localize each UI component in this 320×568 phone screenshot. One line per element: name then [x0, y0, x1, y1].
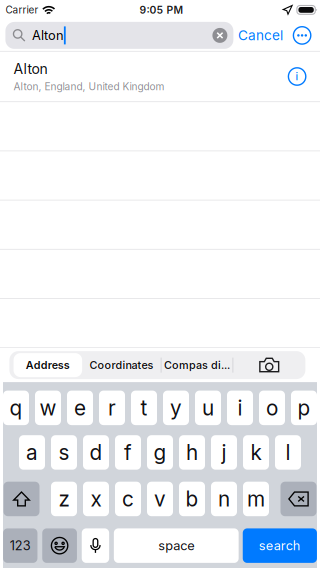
- staticText: Carrier: [5, 4, 38, 16]
- staticText: Alton: [13, 60, 47, 77]
- button[interactable]: Camera: [233, 353, 305, 377]
- staticText: space: [158, 538, 194, 553]
- staticText: i: [296, 70, 299, 83]
- staticText: Coordinates: [89, 359, 153, 372]
- button[interactable]: Coordinates: [82, 353, 161, 377]
- staticText: y: [170, 395, 182, 420]
- staticText: j: [221, 440, 226, 465]
- button[interactable]: k: [243, 435, 269, 470]
- button[interactable]: x: [83, 482, 109, 516]
- staticText: m: [247, 486, 265, 512]
- staticText: t: [140, 395, 147, 420]
- button[interactable]: search: [243, 528, 317, 563]
- button[interactable]: space: [114, 528, 239, 563]
- button[interactable]: Compas di...: [161, 353, 232, 377]
- staticText: e: [74, 395, 86, 420]
- staticText: a: [26, 440, 38, 465]
- staticText: z: [58, 486, 69, 512]
- staticText: l: [285, 440, 290, 465]
- button[interactable]: p: [291, 391, 317, 425]
- staticText: Address: [26, 359, 70, 372]
- button[interactable]: Shift: [3, 482, 39, 516]
- button[interactable]: r: [99, 391, 125, 425]
- button[interactable]: h: [179, 435, 205, 470]
- button[interactable]: 123: [3, 528, 37, 563]
- button[interactable]: Dictation: [82, 528, 109, 563]
- staticText: Compas di...: [164, 359, 230, 372]
- staticText: Alton: [32, 28, 64, 43]
- button[interactable]: d: [83, 435, 109, 470]
- button[interactable]: i: [227, 391, 253, 425]
- staticText: w: [39, 395, 56, 420]
- button[interactable]: v: [147, 482, 173, 516]
- button[interactable]: Alton: [0, 52, 320, 101]
- button[interactable]: j: [211, 435, 237, 470]
- button[interactable]: f: [115, 435, 141, 470]
- button[interactable]: o: [259, 391, 285, 425]
- button[interactable]: t: [131, 391, 157, 425]
- button[interactable]: s: [51, 435, 77, 470]
- button[interactable]: e: [67, 391, 93, 425]
- button[interactable]: More options: [293, 26, 312, 45]
- staticText: Alton, England, United Kingdom: [13, 80, 164, 93]
- button[interactable]: q: [3, 391, 29, 425]
- staticText: 9:05 PM: [139, 4, 183, 16]
- staticText: search: [259, 538, 301, 553]
- button[interactable]: z: [51, 482, 77, 516]
- button[interactable]: Address: [14, 353, 82, 377]
- button[interactable]: m: [243, 482, 269, 516]
- button[interactable]: b: [179, 482, 205, 516]
- button[interactable]: y: [163, 391, 189, 425]
- button[interactable]: Cancel: [233, 22, 287, 49]
- button[interactable]: l: [275, 435, 301, 470]
- staticText: g: [153, 440, 166, 465]
- button[interactable]: n: [211, 482, 237, 516]
- staticText: r: [108, 395, 116, 420]
- button[interactable]: Clear text: [212, 28, 227, 43]
- button[interactable]: Delete: [280, 482, 316, 516]
- button[interactable]: Emoji: [42, 528, 77, 563]
- button[interactable]: u: [195, 391, 221, 425]
- staticText: p: [297, 395, 310, 420]
- staticText: k: [250, 440, 261, 465]
- staticText: s: [58, 440, 69, 465]
- staticText: 123: [10, 538, 31, 553]
- staticText: n: [218, 486, 230, 512]
- button[interactable]: a: [19, 435, 45, 470]
- staticText: f: [124, 440, 132, 465]
- button[interactable]: g: [147, 435, 173, 470]
- staticText: q: [9, 395, 22, 420]
- staticText: h: [186, 440, 198, 465]
- staticText: u: [202, 395, 214, 420]
- staticText: o: [266, 395, 278, 420]
- staticText: b: [185, 486, 198, 512]
- staticText: d: [89, 440, 102, 465]
- staticText: x: [90, 486, 101, 512]
- staticText: c: [122, 486, 134, 512]
- staticText: i: [237, 395, 242, 420]
- staticText: v: [154, 486, 166, 512]
- staticText: Cancel: [238, 27, 283, 44]
- button[interactable]: w: [35, 391, 61, 425]
- button[interactable]: c: [115, 482, 141, 516]
